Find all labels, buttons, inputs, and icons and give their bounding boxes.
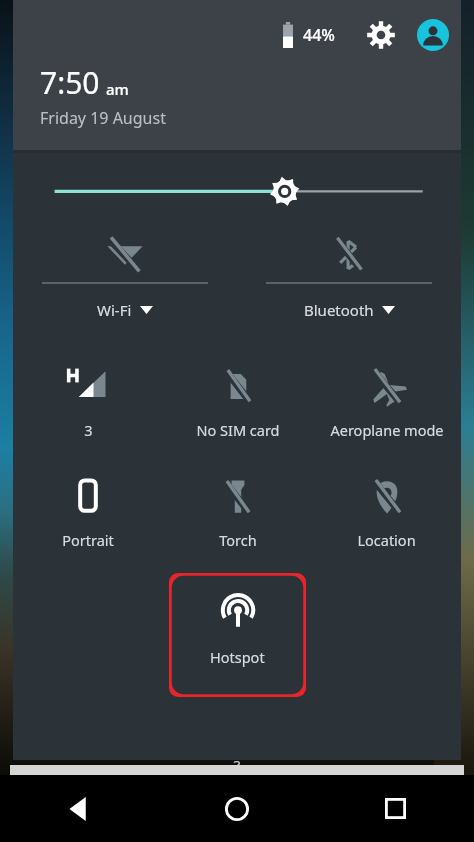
button[interactable]: Settings (364, 18, 398, 52)
button[interactable]: Wi-Fi (13, 217, 237, 342)
button[interactable]: Aeroplane mode (312, 356, 461, 450)
button[interactable]: Back (0, 775, 158, 842)
button[interactable]: User (416, 18, 450, 52)
button[interactable]: Portrait (13, 466, 163, 560)
button[interactable]: Bluetooth (237, 217, 461, 342)
staticText: Bluetooth (304, 300, 374, 320)
staticText: Hotspot (210, 647, 265, 667)
button[interactable]: 3 (13, 356, 163, 450)
button[interactable]: Recents (316, 775, 474, 842)
staticText: Aeroplane mode (330, 420, 444, 440)
staticText: 3 (84, 420, 93, 440)
button[interactable]: Torch (163, 466, 312, 560)
staticText: 7:50 (40, 62, 100, 103)
button[interactable]: Location (312, 466, 461, 560)
button[interactable]: Brightness (13, 153, 461, 217)
staticText: 3 (233, 756, 242, 775)
staticText: am (106, 79, 129, 99)
button[interactable]: No SIM card (163, 356, 312, 450)
staticText: 44% (303, 24, 335, 46)
staticText: Wi-Fi (97, 300, 132, 320)
button[interactable]: Hotspot (169, 573, 306, 697)
other: Battery (280, 22, 296, 48)
staticText: Portrait (62, 530, 114, 550)
staticText: Friday 19 August (40, 107, 166, 129)
staticText: Location (357, 530, 416, 550)
button[interactable]: Home (158, 775, 316, 842)
staticText: No SIM card (196, 420, 280, 440)
staticText: Torch (219, 530, 257, 550)
